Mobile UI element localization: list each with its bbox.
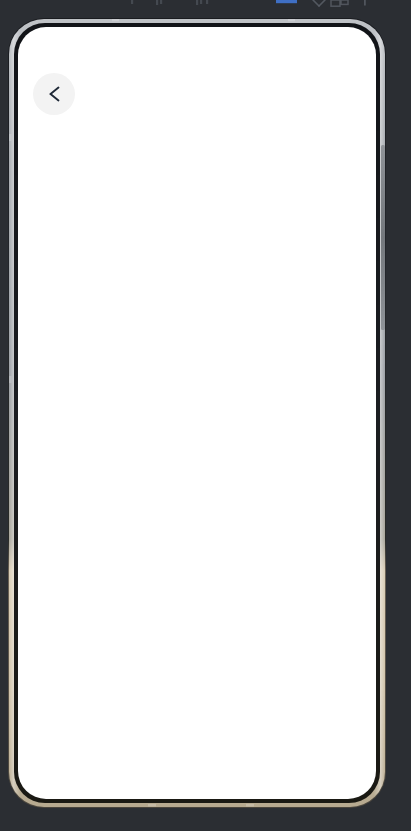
button[interactable]: Back (33, 73, 75, 115)
button[interactable]: Power button (381, 145, 385, 330)
